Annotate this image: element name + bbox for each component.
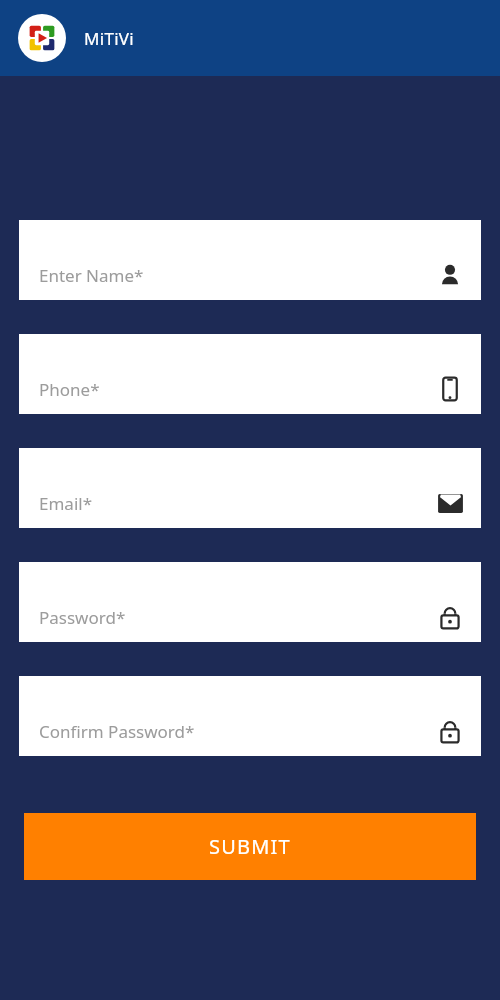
other: Phone bbox=[435, 374, 465, 404]
staticText: Password* bbox=[39, 606, 126, 629]
staticText: Email* bbox=[39, 492, 93, 515]
button[interactable]: Enter Name* bbox=[19, 220, 481, 300]
button[interactable]: Password* bbox=[19, 562, 481, 642]
staticText: MiTiVi bbox=[84, 27, 135, 50]
button[interactable]: Confirm Password* bbox=[19, 676, 481, 756]
other: Password bbox=[435, 602, 465, 632]
other: Confirm password bbox=[435, 716, 465, 746]
button[interactable]: Email* bbox=[19, 448, 481, 528]
staticText: Phone* bbox=[39, 378, 100, 401]
other: Email bbox=[435, 488, 465, 518]
staticText: Confirm Password* bbox=[39, 720, 195, 743]
staticText: Enter Name* bbox=[39, 264, 144, 287]
other: Name bbox=[435, 260, 465, 290]
button[interactable]: SUBMIT bbox=[24, 813, 476, 880]
staticText: SUBMIT bbox=[209, 833, 291, 860]
button[interactable]: Phone* bbox=[19, 334, 481, 414]
button[interactable]: MiTiVi logo bbox=[18, 14, 66, 62]
